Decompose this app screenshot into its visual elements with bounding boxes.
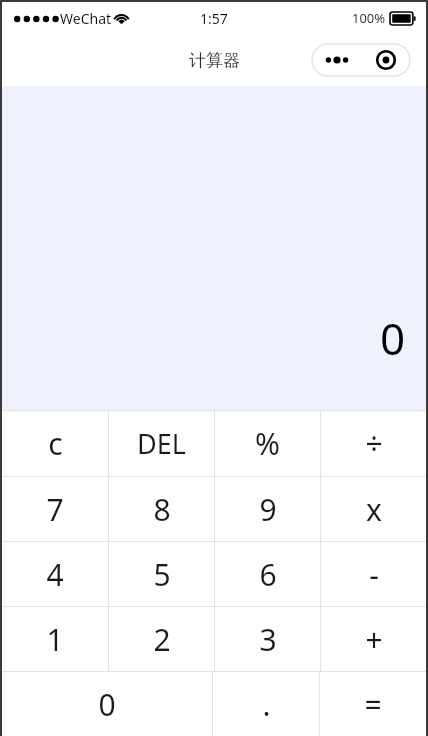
staticText: x: [366, 489, 382, 530]
staticText: WeChat: [60, 9, 112, 28]
staticText: 2: [153, 619, 171, 660]
staticText: 3: [259, 619, 277, 660]
staticText: 8: [153, 489, 171, 530]
button[interactable]: 7: [2, 477, 108, 541]
staticText: -: [369, 554, 379, 595]
staticText: DEL: [137, 425, 186, 462]
button[interactable]: DEL: [109, 411, 214, 476]
button[interactable]: .: [213, 672, 319, 736]
button[interactable]: -: [321, 542, 426, 606]
button[interactable]: %: [215, 411, 320, 476]
button[interactable]: +: [321, 607, 426, 671]
button[interactable]: 4: [2, 542, 108, 606]
button[interactable]: Close mini program: [361, 44, 410, 76]
staticText: 5: [153, 554, 171, 595]
staticText: 4: [46, 554, 64, 595]
staticText: 计算器: [189, 50, 240, 71]
button[interactable]: 9: [215, 477, 320, 541]
button[interactable]: More: [312, 44, 361, 76]
staticText: 0: [98, 684, 116, 725]
staticText: 1:57: [200, 9, 228, 28]
staticText: 7: [46, 489, 64, 530]
staticText: c: [48, 423, 63, 464]
button[interactable]: c: [2, 411, 108, 476]
staticText: %: [255, 423, 280, 464]
button[interactable]: More: [312, 44, 410, 76]
button[interactable]: 8: [109, 477, 214, 541]
staticText: 1: [46, 619, 64, 660]
staticText: 0: [380, 308, 406, 368]
staticText: =: [364, 684, 382, 725]
staticText: +: [365, 619, 383, 660]
button[interactable]: x: [321, 477, 426, 541]
staticText: .: [262, 684, 271, 725]
staticText: 100%: [352, 9, 386, 27]
button[interactable]: 2: [109, 607, 214, 671]
staticText: 9: [259, 489, 277, 530]
button[interactable]: 6: [215, 542, 320, 606]
button[interactable]: 0: [2, 672, 212, 736]
button[interactable]: ÷: [321, 411, 426, 476]
staticText: ÷: [365, 423, 383, 464]
button[interactable]: 5: [109, 542, 214, 606]
staticText: 6: [259, 554, 277, 595]
button[interactable]: 1: [2, 607, 108, 671]
button[interactable]: 3: [215, 607, 320, 671]
button[interactable]: =: [320, 672, 426, 736]
